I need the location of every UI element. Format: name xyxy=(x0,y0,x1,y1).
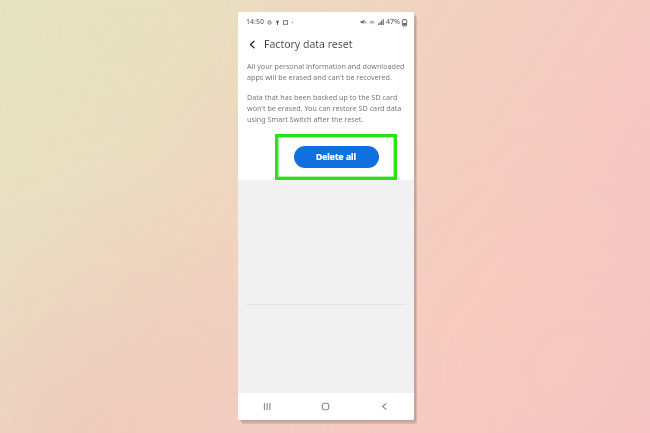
button[interactable]: Back xyxy=(355,393,414,420)
staticText: Delete all xyxy=(316,151,357,163)
staticText: Factory data reset xyxy=(264,37,353,51)
staticText: 14:50 xyxy=(246,17,264,27)
button[interactable]: Delete all xyxy=(294,146,379,168)
staticText: Data that has been backed up to the SD c… xyxy=(247,92,405,124)
staticText: All your personal information and downlo… xyxy=(247,61,405,82)
button[interactable]: Back xyxy=(243,35,261,53)
button[interactable]: Home xyxy=(296,393,355,420)
button[interactable]: Recent apps xyxy=(238,393,296,420)
staticText: 47% xyxy=(386,17,400,27)
